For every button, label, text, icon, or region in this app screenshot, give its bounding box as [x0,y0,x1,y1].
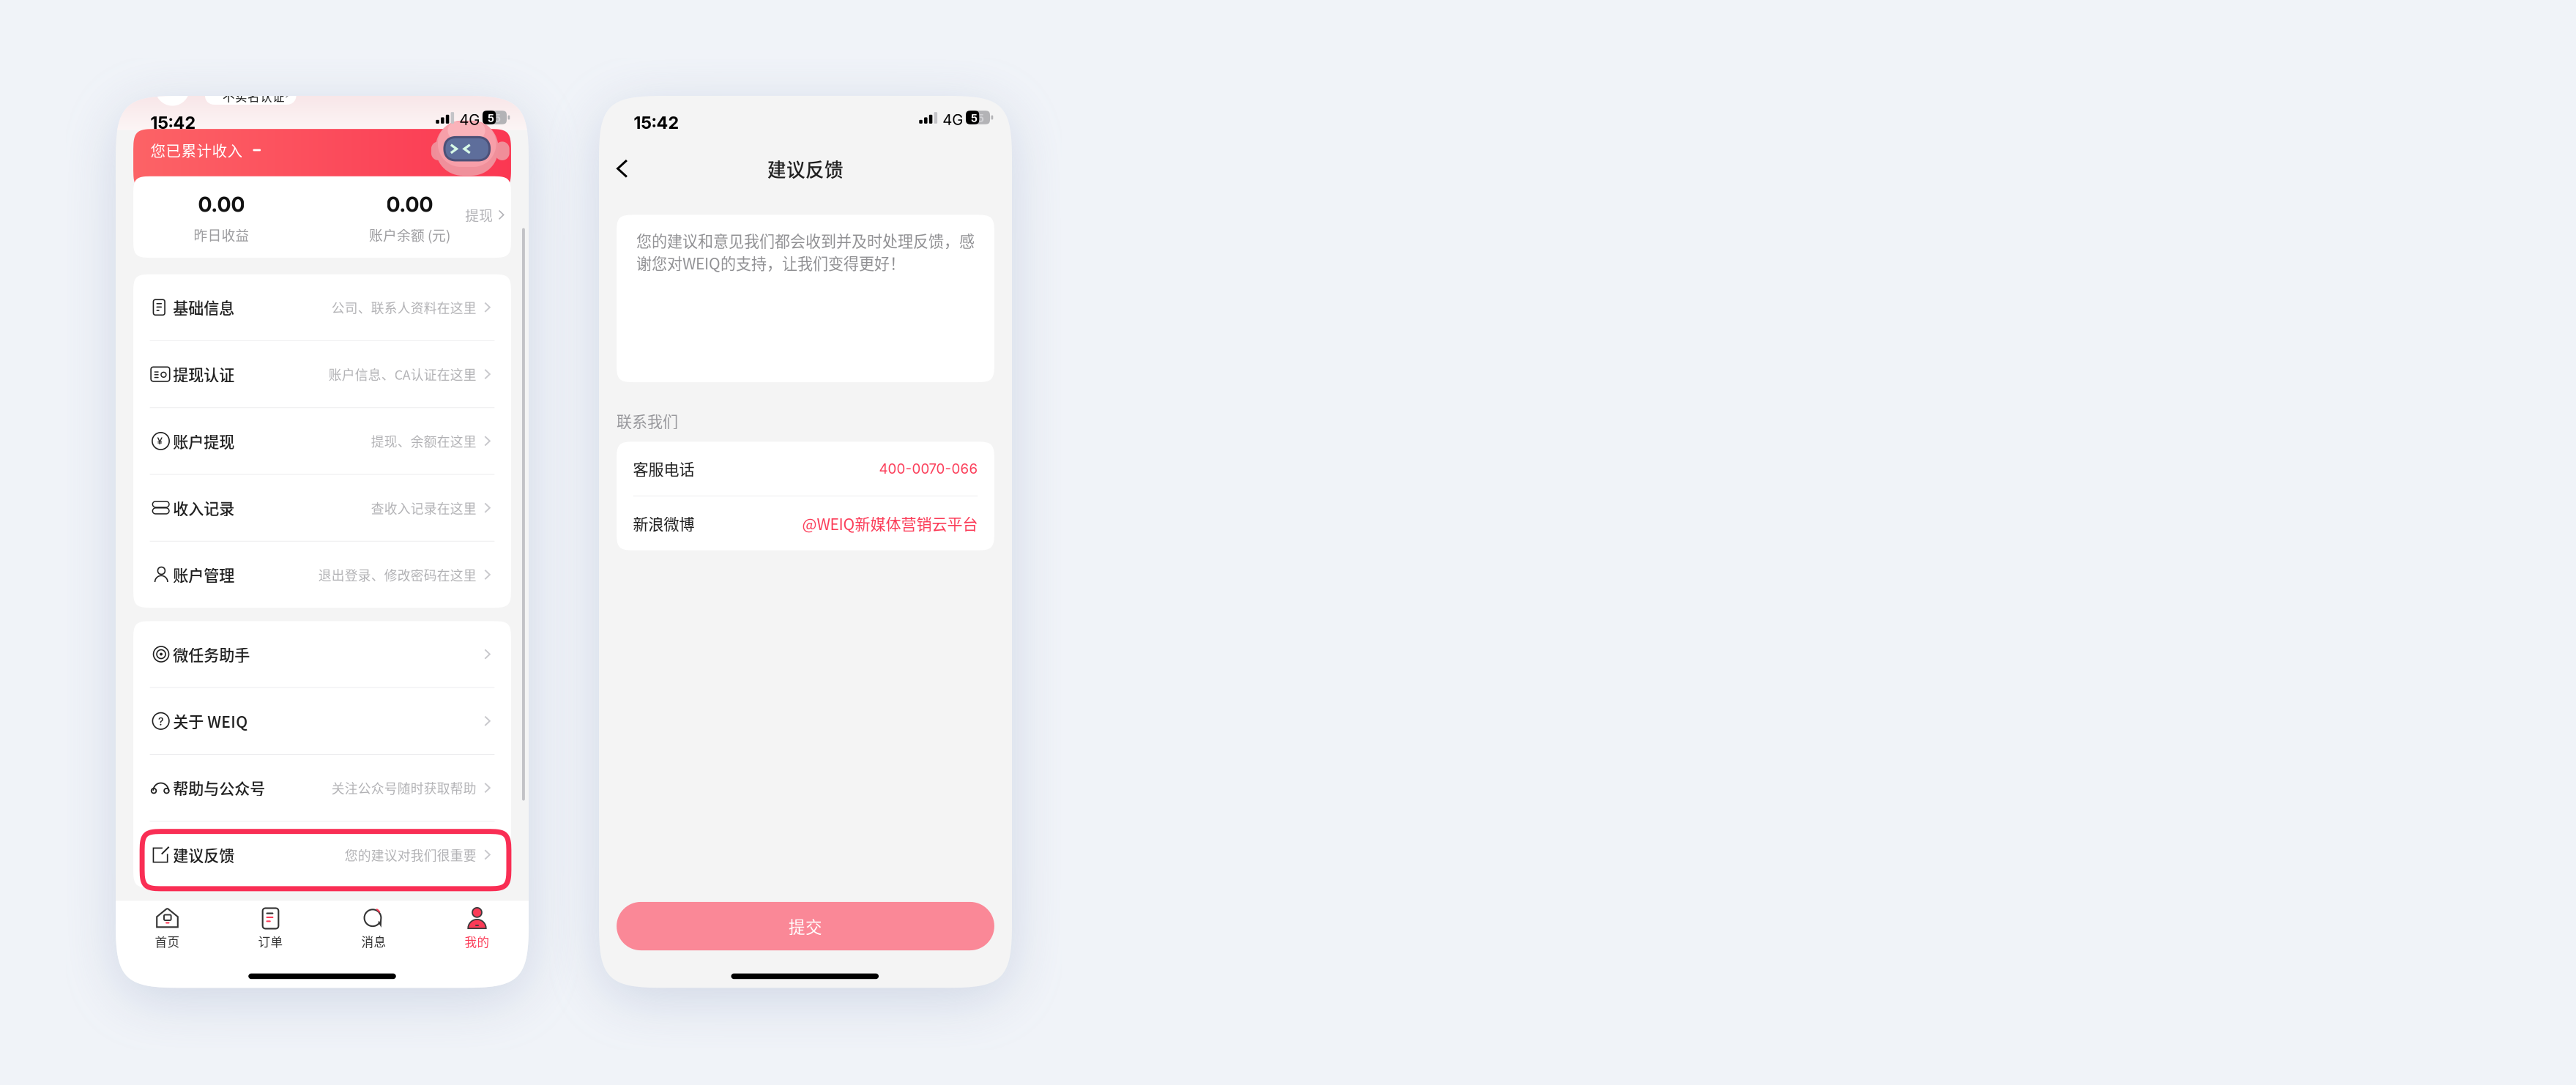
staticText: 您的建议和意见我们都会收到并及时处理反馈，感谢您对WEIQ的支持，让我们变得更好… [636,229,975,274]
staticText: 建议反馈 [173,844,234,866]
staticText: 公司、联系人资料在这里 [332,298,477,317]
staticText: 基础信息 [173,296,234,318]
staticText: ? [158,715,164,728]
button[interactable]: Back [599,149,643,188]
staticText: 提现、余额在这里 [371,432,477,450]
staticText: 您的建议对我们很重要 [345,845,477,864]
staticText: @WEIQ新媒体营销云平台 [802,512,978,535]
button[interactable]: 建议反馈 [133,822,511,888]
button[interactable]: 收入记录 [133,475,511,541]
button[interactable]: ¥ [133,408,511,474]
button[interactable]: 提现 [460,204,509,226]
staticText: 15:42 [634,112,679,133]
staticText: 55 [488,112,501,125]
staticText: 0.00 [386,192,433,217]
button[interactable]: ? [133,688,511,754]
staticText: 微任务助手 [173,643,250,665]
staticText: 400-0070-066 [879,460,978,477]
staticText: 账户信息、CA认证在这里 [329,365,477,384]
button[interactable]: 帮助与公众号 [133,755,511,821]
button[interactable]: 账户管理 [133,542,511,608]
staticText: 建议反馈 [767,155,844,182]
staticText: 5 [971,112,977,125]
button[interactable]: 订单 [219,907,322,949]
staticText: 账户管理 [173,564,234,586]
staticText: 首页 [155,932,180,950]
staticText: 账户提现 [173,430,234,452]
button[interactable]: 提现认证 [133,341,511,407]
staticText: 我的 [465,932,489,950]
button[interactable]: 微任务助手 [133,621,511,687]
staticText: 关注公众号随时获取帮助 [332,778,477,797]
staticText: 收入记录 [173,497,234,519]
button[interactable]: 我的 [425,907,529,949]
staticText: ¥ [157,435,163,447]
staticText: 4G [459,111,480,129]
staticText: 55 [971,112,984,125]
button[interactable]: 基础信息 [133,274,511,340]
button[interactable]: 首页 [116,907,219,949]
staticText: 新浪微博 [633,512,695,535]
staticText: 昨日收益 [194,225,249,245]
button[interactable]: 新浪微博 [617,496,994,550]
staticText: 您已累计收入 [150,139,243,161]
staticText: 提交 [789,914,822,938]
button[interactable]: 提交 [617,902,994,950]
staticText: 客服电话 [633,458,695,480]
staticText: 账户余额 (元) [369,225,450,245]
staticText: 提现 [465,205,493,225]
staticText: 联系我们 [617,410,678,432]
staticText: 15:42 [150,112,196,133]
staticText: 退出登录、修改密码在这里 [318,565,477,584]
button[interactable]: 消息 [322,907,425,949]
staticText: 关于 WEIQ [173,710,248,732]
staticText: 提现认证 [173,363,234,385]
staticText: 5 [488,112,494,125]
staticText: 消息 [361,932,386,950]
staticText: 帮助与公众号 [173,777,265,799]
staticText: 不实名认证 [223,87,285,105]
staticText: 0.00 [198,192,245,217]
staticText: 查收入记录在这里 [371,498,477,517]
staticText: 4G [943,111,963,129]
staticText: 订单 [258,932,283,950]
button[interactable]: 客服电话 [617,442,994,496]
